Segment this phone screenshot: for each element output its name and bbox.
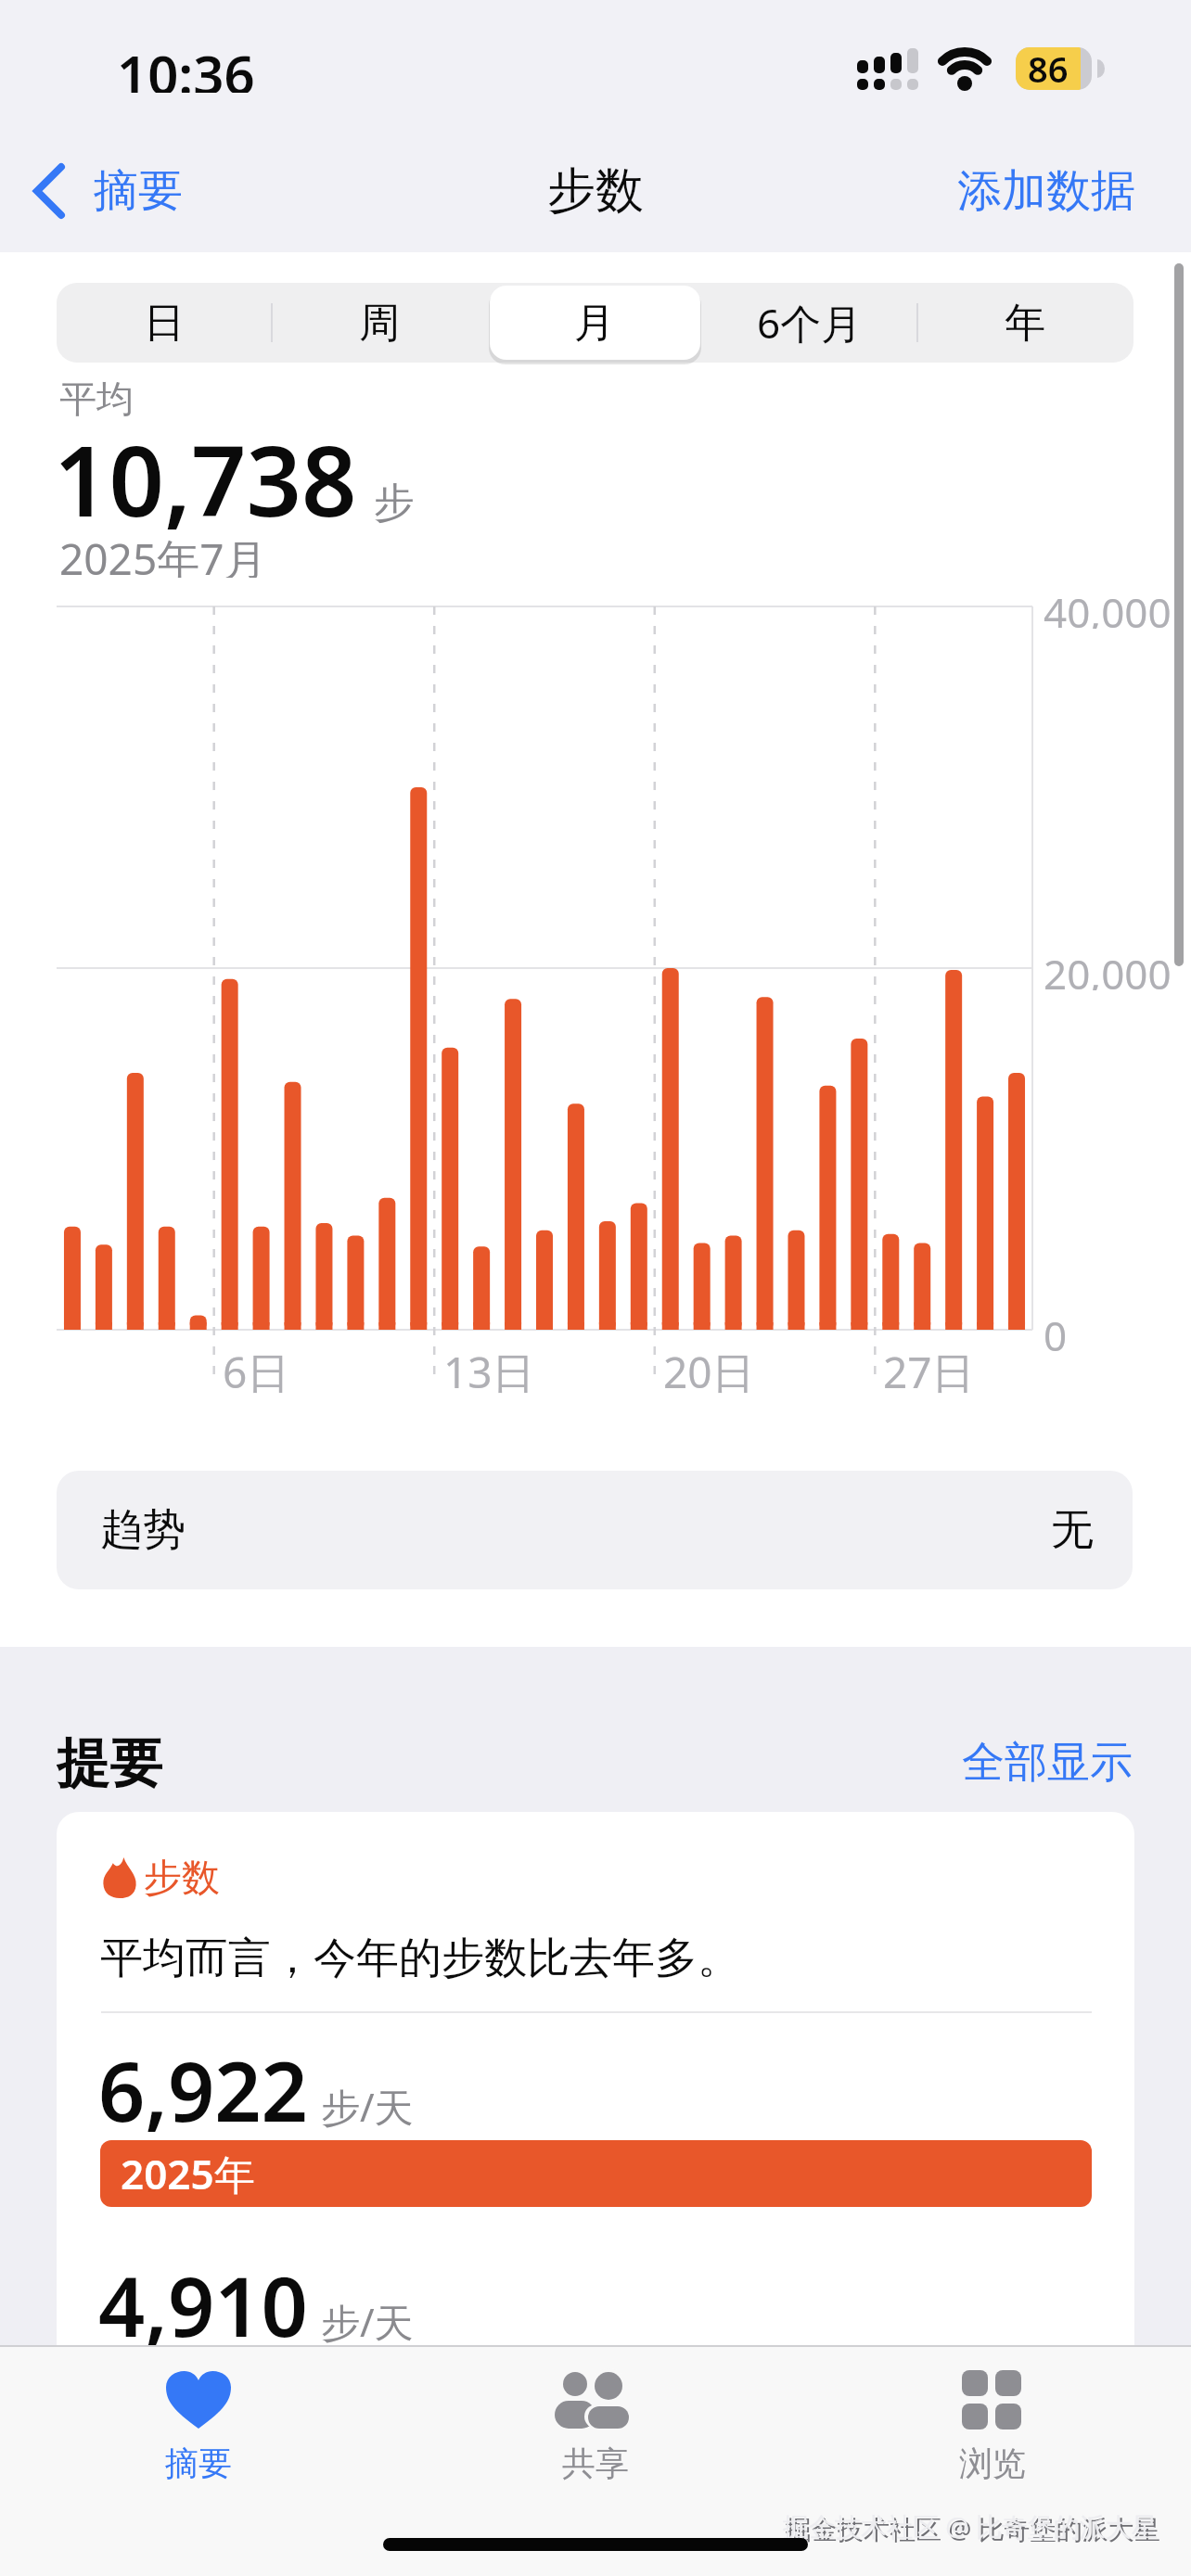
staticText: 周 bbox=[359, 298, 400, 349]
staticText: 40,000 bbox=[1044, 584, 1172, 629]
button[interactable]: 年 bbox=[917, 283, 1133, 363]
staticText: 浏览 bbox=[959, 2442, 1026, 2483]
staticText: 摘要 bbox=[94, 163, 183, 219]
staticText: 全部显示 bbox=[962, 1736, 1133, 1790]
staticText: 4,910 bbox=[98, 2250, 308, 2345]
staticText: 共享 bbox=[562, 2442, 629, 2483]
button[interactable]: 日 bbox=[57, 283, 272, 363]
staticText: 6,922 bbox=[98, 2034, 308, 2146]
staticText: 趋势 bbox=[100, 1503, 186, 1557]
staticText: 年 bbox=[1005, 298, 1045, 349]
button[interactable]: 趋势 bbox=[57, 1471, 1133, 1589]
button[interactable] bbox=[493, 2351, 698, 2508]
staticText: 无 bbox=[1051, 1503, 1094, 1557]
button[interactable]: 6个月 bbox=[702, 283, 917, 363]
staticText: 掘金技术社区 @ 比奇堡的派大星 bbox=[783, 2508, 1158, 2544]
staticText: 摘要 bbox=[165, 2442, 232, 2483]
staticText: 27日 bbox=[883, 1343, 975, 1395]
button[interactable]: 添加数据 bbox=[857, 158, 1135, 224]
button[interactable]: 全部显示 bbox=[762, 1734, 1133, 1792]
staticText: 20,000 bbox=[1044, 946, 1172, 990]
staticText: 10,738 bbox=[54, 414, 357, 545]
button[interactable]: 月 bbox=[487, 283, 702, 363]
staticText: 10:36 bbox=[117, 37, 255, 93]
button[interactable] bbox=[96, 2351, 301, 2508]
staticText: 0 bbox=[1044, 1307, 1068, 1352]
staticText: 步数 bbox=[547, 160, 644, 222]
staticText: 平均 bbox=[59, 376, 134, 422]
staticText: 平均而言，今年的步数比去年多。 bbox=[100, 1932, 740, 1985]
staticText: 步 bbox=[374, 478, 415, 529]
staticText: 步/天 bbox=[321, 2080, 414, 2133]
staticText: 6日 bbox=[223, 1343, 290, 1395]
button[interactable]: 周 bbox=[272, 283, 487, 363]
staticText: 步/天 bbox=[321, 2295, 414, 2345]
staticText: 13日 bbox=[443, 1343, 535, 1395]
staticText: 6个月 bbox=[757, 295, 863, 351]
staticText: 20日 bbox=[663, 1343, 755, 1395]
staticText: 提要 bbox=[57, 1730, 162, 1795]
staticText: 86 bbox=[1028, 45, 1069, 89]
button[interactable]: 步数 bbox=[57, 1812, 1134, 2345]
button[interactable] bbox=[28, 158, 260, 224]
staticText: 日 bbox=[144, 298, 185, 349]
staticText: 掘金技术社区 @ 比奇堡的派大星 bbox=[786, 2511, 1160, 2546]
staticText: 2025年7月 bbox=[59, 529, 267, 578]
staticText: 2025年 bbox=[121, 2146, 255, 2201]
staticText: 月 bbox=[574, 298, 615, 349]
staticText: 添加数据 bbox=[957, 163, 1135, 219]
button[interactable] bbox=[890, 2351, 1095, 2508]
staticText: 步数 bbox=[144, 1855, 220, 1901]
